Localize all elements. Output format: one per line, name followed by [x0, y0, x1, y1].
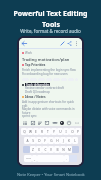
staticText: Add in-app gesture shortcuts for quick e…	[22, 100, 79, 107]
staticText: Powerful Text Editing	[13, 9, 88, 19]
button[interactable]: O	[69, 128, 75, 135]
staticText: L	[74, 139, 76, 143]
button[interactable]: R	[39, 128, 45, 135]
button[interactable]: B	[54, 146, 60, 153]
staticText: Work	[25, 51, 33, 55]
button[interactable]: G	[48, 137, 54, 144]
button[interactable]: N	[60, 146, 66, 153]
button[interactable]: K	[66, 137, 72, 144]
staticText: P	[77, 130, 79, 134]
button[interactable]: More options	[73, 40, 80, 47]
button[interactable]: E	[33, 128, 39, 135]
button[interactable]: Y	[51, 128, 57, 135]
staticText: Z	[32, 148, 34, 152]
staticText: Maybe dictate with voice commands in fut…	[22, 107, 79, 114]
button[interactable]: V	[48, 146, 54, 153]
staticText: ,	[34, 157, 35, 161]
staticText: Tools	[42, 20, 60, 30]
staticText: B	[56, 148, 59, 152]
staticText: C	[44, 148, 47, 152]
staticText: Ideas / Notes	[25, 95, 46, 99]
staticText: G	[50, 139, 53, 143]
staticText: Q	[23, 130, 26, 134]
button[interactable]: Format option	[44, 120, 49, 125]
button[interactable]: F	[42, 137, 48, 144]
staticText: J	[63, 139, 64, 143]
staticText: W	[29, 130, 32, 134]
button[interactable]: Q	[21, 128, 27, 135]
button[interactable]: J	[60, 137, 66, 144]
staticText: Track deliverables	[26, 83, 50, 86]
staticText: Review vendor contract draft	[25, 86, 65, 90]
button[interactable]: X	[36, 146, 42, 153]
button[interactable]: Edit	[59, 40, 66, 47]
staticText: Write, format & record audio	[20, 28, 81, 34]
button[interactable]: Z	[30, 146, 36, 153]
button[interactable]: H	[54, 137, 60, 144]
button[interactable]: ?123	[24, 155, 32, 162]
staticText: S	[32, 139, 34, 143]
staticText: H	[56, 139, 59, 143]
staticText: X	[38, 148, 40, 152]
button[interactable]: M	[66, 146, 72, 153]
staticText: .	[66, 157, 67, 161]
staticText: M	[68, 148, 71, 152]
staticText: Finish implementing the login sync flow	[22, 68, 76, 72]
staticText: K	[68, 139, 70, 143]
staticText: Note Keeper • Your Smart Notebook	[17, 172, 85, 177]
button[interactable]: W	[27, 128, 33, 135]
button[interactable]: T	[45, 128, 51, 135]
staticText: N	[62, 148, 65, 152]
staticText: Y	[53, 130, 55, 134]
button[interactable]: Share	[66, 40, 73, 47]
staticText: Top Priorities	[25, 63, 46, 67]
button[interactable]: U	[57, 128, 63, 135]
button[interactable]: Back	[21, 40, 28, 47]
button[interactable]: ,	[32, 155, 37, 162]
staticText: D	[38, 139, 41, 143]
button[interactable]: Format option	[37, 120, 42, 125]
staticText: A	[26, 139, 29, 143]
button[interactable]: I	[63, 128, 69, 135]
button[interactable]: A	[24, 137, 30, 144]
staticText: O	[71, 130, 74, 134]
button[interactable]: .	[64, 155, 69, 162]
button[interactable]: Format option	[59, 120, 64, 125]
button[interactable]: D	[36, 137, 42, 144]
button[interactable]: C	[42, 146, 48, 153]
staticText: sprint sync	[22, 114, 37, 118]
staticText: Trading motivation/plan	[22, 57, 70, 62]
staticText: ?123	[26, 157, 31, 160]
staticText: F	[44, 139, 46, 143]
staticText: V	[50, 148, 52, 152]
staticText: Draft Q3 roadmap	[25, 90, 50, 94]
button[interactable]: Format option	[22, 120, 27, 125]
staticText: U	[59, 130, 62, 134]
staticText: Fix onboarding bug for new users	[22, 72, 68, 76]
button[interactable]: Format option	[66, 120, 71, 125]
button[interactable]: P	[75, 128, 81, 135]
button[interactable]: L	[72, 137, 78, 144]
staticText: R	[41, 130, 43, 134]
staticText: I	[65, 130, 67, 134]
staticText: E	[35, 130, 37, 134]
button[interactable]: S	[30, 137, 36, 144]
button[interactable]: Format option	[74, 120, 79, 125]
button[interactable]: Format option	[30, 120, 35, 125]
button[interactable]: Format option	[52, 120, 57, 125]
staticText: T	[47, 130, 49, 134]
